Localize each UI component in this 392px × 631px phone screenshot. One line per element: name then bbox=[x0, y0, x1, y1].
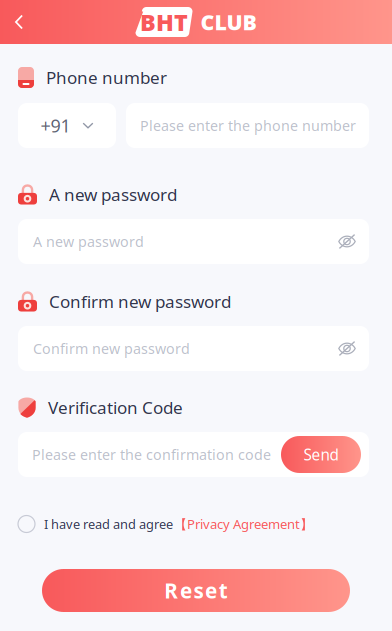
button[interactable]: I have read and agree bbox=[0, 514, 392, 534]
staticText: Confirm new password bbox=[33, 339, 190, 358]
staticText: Confirm new password bbox=[49, 290, 231, 313]
staticText: I have read and agree bbox=[44, 515, 173, 533]
button[interactable]: Reset bbox=[0, 569, 392, 612]
staticText: 【Privacy Agreement】 bbox=[174, 515, 313, 533]
button[interactable]: +91 bbox=[18, 103, 116, 148]
button[interactable]: Send bbox=[281, 436, 361, 473]
staticText: Reset bbox=[164, 576, 228, 604]
staticText: Please enter the phone number bbox=[140, 116, 356, 135]
staticText: BHT bbox=[140, 6, 188, 38]
staticText: A new password bbox=[49, 183, 177, 206]
staticText: +91 bbox=[40, 113, 70, 138]
staticText: Verification Code bbox=[48, 396, 183, 419]
staticText: Send bbox=[303, 444, 338, 465]
staticText: CLUB bbox=[200, 7, 256, 37]
button[interactable]: Back bbox=[0, 0, 38, 44]
staticText: Phone number bbox=[46, 66, 167, 89]
staticText: A new password bbox=[33, 232, 144, 251]
staticText: Please enter the confirmation code bbox=[32, 445, 271, 464]
